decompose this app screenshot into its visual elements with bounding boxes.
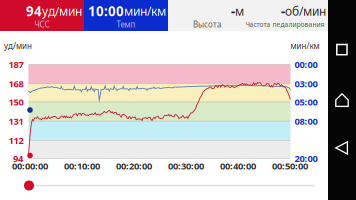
- staticText: 131: [8, 115, 23, 127]
- staticText: 20:00: [294, 152, 317, 165]
- staticText: 08:00: [294, 115, 317, 127]
- staticText: 94: [26, 2, 42, 20]
- staticText: 00:30:00: [168, 160, 204, 172]
- button[interactable]: 94: [0, 0, 84, 31]
- staticText: мин/км: [124, 3, 166, 19]
- staticText: Темп: [116, 19, 135, 30]
- staticText: 150: [8, 96, 23, 108]
- staticText: уд/мин: [42, 3, 82, 19]
- staticText: 94: [13, 152, 23, 165]
- staticText: 00:20:00: [116, 160, 152, 172]
- staticText: 05:00: [294, 96, 317, 108]
- button[interactable]: Home: [328, 93, 356, 107]
- staticText: 00:00:00: [12, 160, 48, 172]
- staticText: 187: [8, 58, 23, 71]
- staticText: м: [235, 3, 244, 19]
- staticText: Частота педалирования: [245, 20, 324, 29]
- staticText: об/мин: [285, 3, 326, 19]
- staticText: 03:00: [294, 77, 317, 90]
- staticText: Высота: [193, 19, 221, 30]
- button[interactable]: 10:00: [84, 0, 168, 31]
- staticText: 00:10:00: [64, 160, 100, 172]
- staticText: уд/мин: [4, 41, 32, 51]
- button[interactable]: -: [168, 0, 246, 31]
- staticText: -: [281, 2, 285, 20]
- button[interactable]: Recent apps: [328, 43, 356, 56]
- staticText: мин/км: [290, 41, 319, 51]
- staticText: -: [231, 2, 235, 20]
- button[interactable]: Back: [328, 141, 356, 155]
- staticText: 112: [8, 134, 23, 146]
- button[interactable]: -: [246, 0, 328, 31]
- staticText: 00:40:00: [220, 160, 256, 172]
- staticText: 10:00: [88, 2, 124, 20]
- staticText: 168: [8, 77, 23, 90]
- staticText: ЧСС: [34, 19, 49, 30]
- staticText: 00:00: [294, 58, 317, 71]
- staticText: 00:50:00: [272, 160, 308, 172]
